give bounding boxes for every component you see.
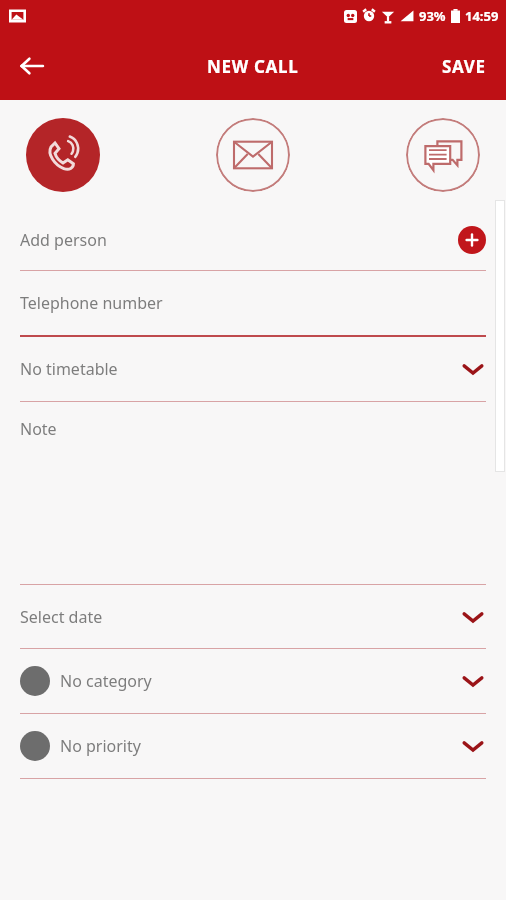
staticText: 14:59 bbox=[465, 7, 499, 25]
button[interactable]: Telephone number bbox=[0, 271, 506, 337]
button[interactable]: No priority bbox=[0, 714, 506, 779]
other: Expand bbox=[460, 604, 486, 630]
other: Expand bbox=[460, 733, 486, 759]
button[interactable]: Add person bbox=[0, 210, 506, 271]
button[interactable]: No timetable bbox=[0, 337, 506, 402]
staticText: No timetable bbox=[20, 358, 118, 380]
button[interactable]: SAVE bbox=[422, 32, 506, 100]
button[interactable]: No category bbox=[0, 649, 506, 714]
staticText: Add person bbox=[20, 229, 107, 251]
button[interactable]: Back bbox=[8, 42, 56, 90]
staticText: No priority bbox=[60, 735, 141, 757]
staticText: NEW CALL bbox=[207, 55, 299, 78]
staticText: No category bbox=[60, 670, 152, 692]
button[interactable]: Select date bbox=[0, 585, 506, 649]
button[interactable]: Message bbox=[406, 118, 480, 192]
other: Expand bbox=[460, 356, 486, 382]
button[interactable]: Note bbox=[0, 402, 506, 585]
button[interactable]: Email bbox=[216, 118, 290, 192]
button[interactable]: Add person bbox=[458, 226, 486, 254]
staticText: SAVE bbox=[442, 55, 486, 78]
staticText: Telephone number bbox=[20, 292, 163, 314]
button[interactable]: Call bbox=[26, 118, 100, 192]
staticText: Note bbox=[20, 418, 57, 440]
staticText: 93% bbox=[419, 7, 446, 25]
staticText: Select date bbox=[20, 606, 103, 628]
other: Expand bbox=[460, 668, 486, 694]
